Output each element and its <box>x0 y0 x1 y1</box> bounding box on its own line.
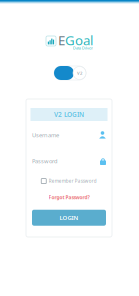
staticText: Password <box>32 157 58 165</box>
button[interactable]: LOGIN <box>32 210 106 226</box>
button[interactable]: Remember Password <box>41 178 97 184</box>
staticText: Remember Password <box>49 178 97 184</box>
staticText: Username <box>32 131 59 139</box>
staticText: V2 LOGIN <box>54 110 84 119</box>
staticText: Goal <box>65 31 93 49</box>
button[interactable]: Forgot Password? <box>48 194 89 201</box>
staticText: E <box>58 31 65 49</box>
staticText: Forgot Password? <box>48 194 89 201</box>
button[interactable]: Toggle version 2 <box>54 66 86 80</box>
staticText: Data Driven <box>73 45 93 50</box>
staticText: V2 <box>77 70 82 76</box>
staticText: LOGIN <box>59 214 78 222</box>
